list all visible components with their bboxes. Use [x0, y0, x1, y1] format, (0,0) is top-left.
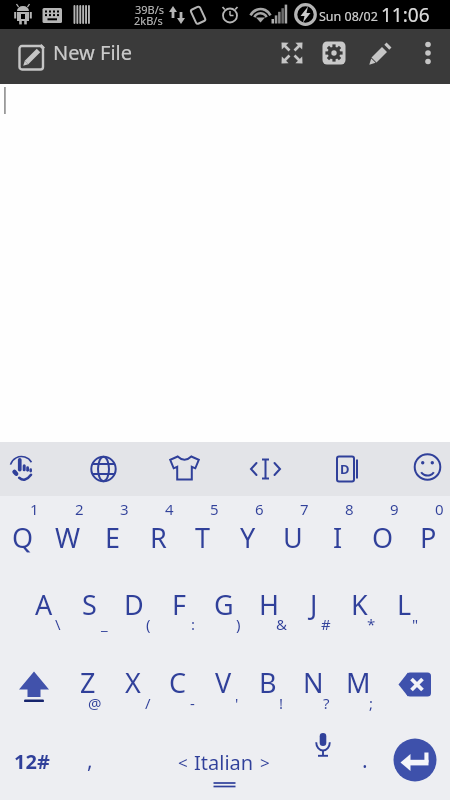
- staticText: 0: [435, 499, 444, 519]
- staticText: W: [55, 519, 81, 556]
- button[interactable]: [150, 442, 225, 496]
- staticText: \: [55, 614, 61, 634]
- button[interactable]: G: [202, 569, 246, 639]
- button[interactable]: B: [246, 647, 290, 717]
- button[interactable]: P: [406, 502, 450, 572]
- button[interactable]: [305, 726, 343, 774]
- staticText: S: [82, 586, 97, 623]
- staticText: E: [105, 519, 121, 556]
- button[interactable]: S: [67, 569, 111, 639]
- staticText: 12#: [14, 748, 50, 775]
- staticText: P: [420, 519, 437, 556]
- button[interactable]: [300, 442, 375, 496]
- staticText: B: [259, 664, 277, 701]
- button[interactable]: D: [112, 569, 156, 639]
- button[interactable]: K: [337, 569, 381, 639]
- staticText: U: [283, 519, 303, 556]
- staticText: T: [195, 519, 211, 556]
- staticText: Z: [80, 664, 96, 701]
- button[interactable]: New File: [53, 38, 213, 66]
- staticText: ": [412, 614, 419, 634]
- staticText: 2kB/s: [134, 13, 163, 28]
- button[interactable]: Q: [1, 502, 45, 572]
- staticText: 4: [165, 499, 174, 519]
- button[interactable]: [75, 442, 150, 496]
- button[interactable]: J: [292, 569, 336, 639]
- button[interactable]: [12, 36, 52, 78]
- staticText: ): [236, 614, 241, 634]
- button[interactable]: [375, 442, 450, 496]
- staticText: 6: [255, 499, 264, 519]
- staticText: (: [146, 614, 151, 634]
- button[interactable]: [274, 35, 310, 71]
- staticText: V: [215, 664, 232, 701]
- staticText: 5: [210, 499, 219, 519]
- button[interactable]: V: [201, 647, 245, 717]
- staticText: 1: [30, 499, 39, 519]
- staticText: D: [340, 460, 350, 478]
- staticText: 7: [300, 499, 309, 519]
- button[interactable]: R: [136, 502, 180, 572]
- staticText: @: [88, 693, 102, 713]
- staticText: ?: [323, 693, 330, 713]
- staticText: 11:06: [381, 2, 430, 28]
- staticText: A: [35, 586, 53, 623]
- button[interactable]: U: [271, 502, 315, 572]
- staticText: <: [178, 751, 188, 774]
- staticText: 3: [120, 499, 129, 519]
- button[interactable]: [414, 35, 444, 71]
- staticText: O: [372, 519, 394, 556]
- staticText: X: [125, 664, 141, 701]
- button[interactable]: [384, 648, 450, 724]
- button[interactable]: X: [111, 647, 155, 717]
- staticText: ,: [87, 746, 93, 775]
- staticText: M: [346, 664, 371, 701]
- button[interactable]: .: [343, 723, 387, 797]
- button[interactable]: 12#: [1, 724, 63, 798]
- staticText: ;: [369, 693, 374, 713]
- button[interactable]: [0, 648, 66, 724]
- button[interactable]: [392, 737, 438, 783]
- staticText: K: [351, 586, 368, 623]
- staticText: #: [321, 614, 331, 634]
- button[interactable]: M: [336, 647, 380, 717]
- button[interactable]: ,: [65, 723, 115, 797]
- button[interactable]: L: [382, 569, 426, 639]
- button[interactable]: F: [157, 569, 201, 639]
- button[interactable]: E: [91, 502, 135, 572]
- button[interactable]: [125, 726, 295, 798]
- staticText: J: [310, 586, 318, 623]
- staticText: !: [279, 693, 284, 713]
- staticText: Italian: [194, 749, 254, 776]
- staticText: 2: [75, 499, 84, 519]
- staticText: 8: [345, 499, 354, 519]
- staticText: D: [124, 586, 144, 623]
- staticText: &: [276, 614, 287, 634]
- staticText: 9: [390, 499, 399, 519]
- staticText: C: [169, 664, 187, 701]
- button[interactable]: O: [361, 502, 405, 572]
- staticText: I: [333, 519, 343, 556]
- staticText: New File: [53, 39, 132, 66]
- staticText: /: [145, 693, 151, 713]
- button[interactable]: [0, 442, 75, 496]
- button[interactable]: [225, 442, 300, 496]
- button[interactable]: N: [291, 647, 335, 717]
- staticText: Y: [240, 519, 256, 556]
- staticText: -: [190, 693, 195, 713]
- staticText: 39B/s: [135, 2, 165, 17]
- button[interactable]: W: [46, 502, 90, 572]
- button[interactable]: T: [181, 502, 225, 572]
- staticText: .: [362, 746, 368, 775]
- button[interactable]: C: [156, 647, 200, 717]
- button[interactable]: Y: [226, 502, 270, 572]
- button[interactable]: I: [316, 502, 360, 572]
- button[interactable]: [362, 35, 398, 71]
- button[interactable]: A: [22, 569, 66, 639]
- staticText: N: [303, 664, 324, 701]
- staticText: F: [172, 586, 187, 623]
- button[interactable]: Z: [66, 647, 110, 717]
- button[interactable]: [316, 35, 352, 71]
- button[interactable]: H: [247, 569, 291, 639]
- staticText: Sun 08/02: [319, 8, 378, 25]
